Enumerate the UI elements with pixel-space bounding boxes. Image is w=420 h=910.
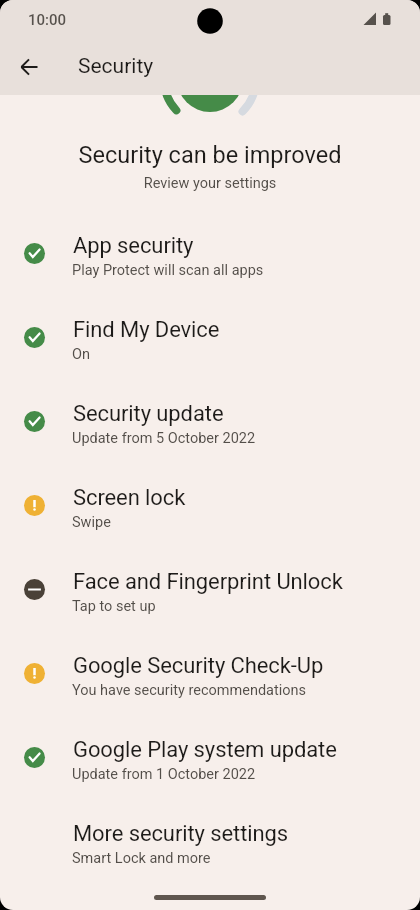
staticText: Google Security Check-Up bbox=[73, 653, 324, 679]
staticText: 10:00 bbox=[28, 11, 67, 29]
button[interactable]: Face and Fingerprint Unlock bbox=[0, 547, 420, 631]
staticText: More security settings bbox=[73, 821, 289, 847]
staticText: Security update bbox=[73, 401, 224, 427]
button[interactable]: Find My Device bbox=[0, 295, 420, 379]
button[interactable]: Back bbox=[11, 49, 47, 85]
staticText: Smart Lock and more bbox=[72, 850, 211, 867]
staticText: Update from 1 October 2022 bbox=[72, 766, 256, 783]
button[interactable]: Screen lock bbox=[0, 463, 420, 547]
staticText: You have security recommendations bbox=[72, 682, 307, 699]
staticText: Security can be improved bbox=[0, 141, 420, 169]
button[interactable]: More security settings bbox=[0, 799, 420, 883]
staticText: Google Play system update bbox=[73, 737, 337, 763]
staticText: Face and Fingerprint Unlock bbox=[73, 569, 343, 595]
staticText: Swipe bbox=[72, 514, 111, 531]
staticText: Review your settings bbox=[0, 175, 420, 192]
staticText: On bbox=[72, 346, 90, 363]
button[interactable]: Google Security Check-Up bbox=[0, 631, 420, 715]
staticText: Play Protect will scan all apps bbox=[72, 262, 264, 279]
staticText: Update from 5 October 2022 bbox=[72, 430, 256, 447]
staticText: App security bbox=[73, 233, 194, 259]
staticText: Tap to set up bbox=[72, 598, 156, 615]
staticText: Security bbox=[78, 54, 154, 79]
button[interactable]: App security bbox=[0, 211, 420, 295]
button[interactable]: Google Play system update bbox=[0, 715, 420, 799]
staticText: Find My Device bbox=[73, 317, 220, 343]
button[interactable]: Security update bbox=[0, 379, 420, 463]
staticText: Screen lock bbox=[73, 485, 186, 511]
